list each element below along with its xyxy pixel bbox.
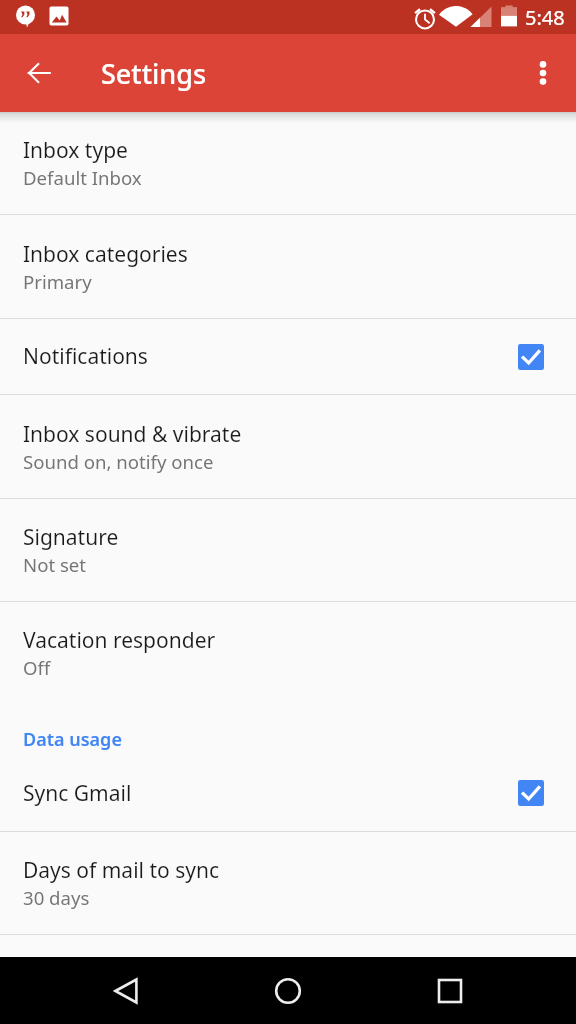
staticText: Inbox categories (23, 240, 188, 269)
staticText: Vacation responder (23, 626, 216, 655)
staticText: Sync Gmail (23, 779, 132, 808)
button[interactable]: Home (256, 959, 320, 1023)
button[interactable]: Recent apps (418, 959, 482, 1023)
staticText: Days of mail to sync (23, 856, 220, 885)
staticText: 5:48 (525, 4, 565, 31)
button[interactable]: Navigate up (15, 49, 63, 97)
staticText: Notifications (23, 342, 148, 371)
button[interactable]: Back (94, 959, 158, 1023)
button[interactable]: More options (519, 49, 567, 97)
staticText: Default Inbox (23, 165, 142, 190)
staticText: Inbox type (23, 136, 128, 165)
button[interactable]: Inbox sound & vibrate (0, 395, 576, 498)
button[interactable]: Notifications (0, 319, 576, 394)
staticText: Not set (23, 552, 87, 577)
button[interactable]: Inbox type (0, 112, 576, 214)
staticText: Sound on, notify once (23, 449, 214, 474)
button[interactable]: Inbox categories (0, 215, 576, 318)
staticText: Inbox sound & vibrate (23, 420, 242, 449)
button[interactable]: Signature (0, 499, 576, 601)
button[interactable]: Days of mail to sync (0, 832, 576, 934)
staticText: Data usage (23, 727, 122, 752)
staticText: 30 days (23, 885, 90, 910)
staticText: Signature (23, 523, 119, 552)
staticText: Off (23, 655, 51, 680)
staticText: Settings (101, 55, 207, 92)
button[interactable]: Sync Gmail (0, 759, 576, 831)
button[interactable]: Vacation responder (0, 602, 576, 704)
staticText: Primary (23, 269, 92, 294)
